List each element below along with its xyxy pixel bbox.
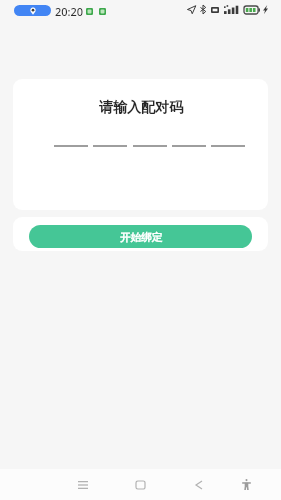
staticText: 开始绑定	[120, 231, 162, 244]
staticText: 20:20	[55, 4, 84, 19]
button[interactable]: Home	[129, 473, 152, 496]
button[interactable]: Accessibility	[235, 473, 258, 496]
button[interactable]: Back	[187, 473, 210, 496]
button[interactable]: 开始绑定	[29, 225, 252, 248]
staticText: 请输入配对码	[99, 99, 183, 117]
button[interactable]: Pairing code input	[54, 145, 245, 147]
button[interactable]: Recents	[71, 473, 94, 496]
